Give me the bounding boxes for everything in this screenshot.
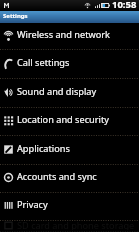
other: New mail [4,3,9,8]
button[interactable]: Call settings [0,50,139,79]
staticText: Wireless and network [17,28,110,41]
button[interactable]: Applications [0,136,139,165]
staticText: Call settings [17,56,70,69]
button[interactable]: Accounts and sync [0,165,139,193]
button[interactable]: Privacy [0,193,139,221]
button[interactable]: Wireless and network [0,23,139,50]
button[interactable]: Location and security [0,108,139,136]
staticText: Applications [17,142,70,155]
staticText: Location and security [17,113,109,126]
staticText: Privacy [17,198,48,211]
staticText: Settings [3,12,28,20]
staticText: Sound and display [17,85,97,98]
staticText: Accounts and sync [17,170,97,183]
staticText: 10:58 [112,0,137,9]
button[interactable]: SD card and phone storage [0,221,139,232]
staticText: SD card and phone storage [17,219,135,230]
button[interactable]: Sound and display [0,79,139,108]
